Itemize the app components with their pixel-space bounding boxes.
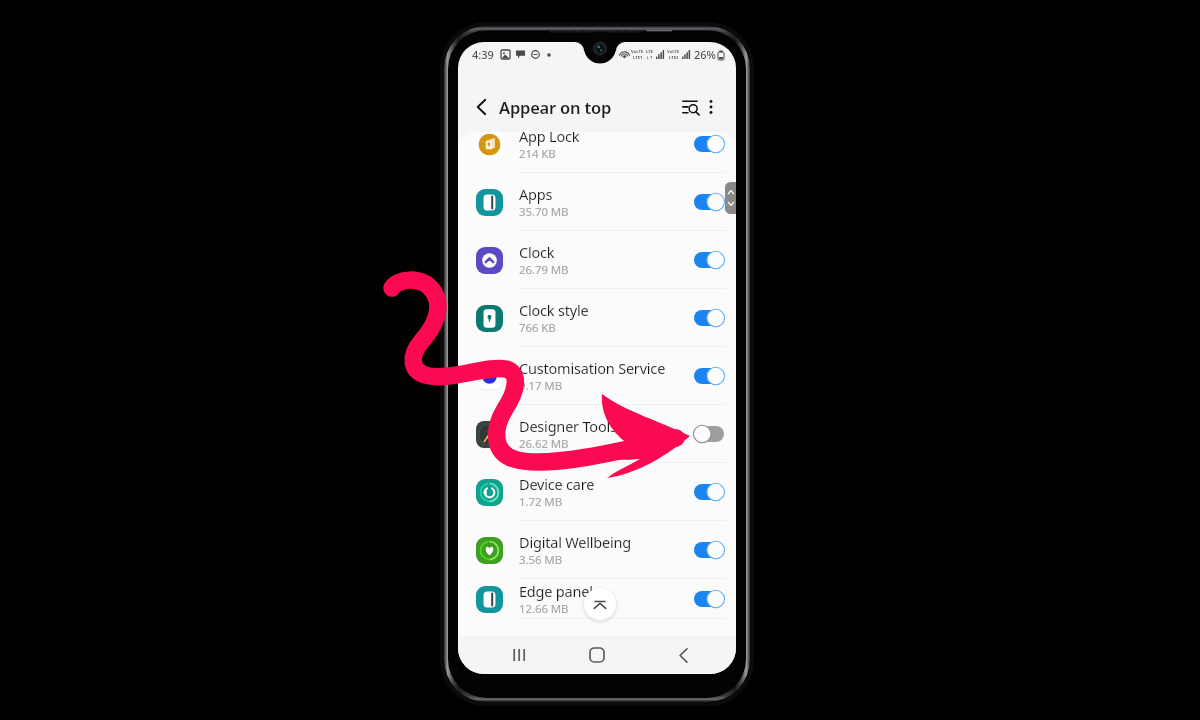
staticText: Customisation Service — [519, 358, 666, 378]
button[interactable]: Apps — [458, 173, 736, 231]
staticText: Designer Tools Pro — [519, 416, 643, 436]
button[interactable]: Device care — [458, 463, 736, 521]
staticText: Appear on top — [499, 96, 612, 118]
staticText: Apps — [519, 184, 553, 204]
staticText: 26% — [694, 47, 716, 62]
staticText: 3.56 MB — [519, 552, 563, 568]
button[interactable]: On — [694, 481, 724, 503]
staticText: ↓↑ — [646, 55, 654, 60]
button[interactable]: On — [694, 365, 724, 387]
staticText: 214 KB — [519, 146, 556, 162]
staticText: 26.79 MB — [519, 262, 569, 278]
button[interactable]: Off — [694, 423, 724, 445]
button[interactable]: Navigate up — [464, 90, 498, 124]
button[interactable]: On — [694, 588, 724, 610]
staticText: LTE1 — [633, 55, 643, 61]
button[interactable]: Clock style — [458, 289, 736, 347]
button[interactable]: Back — [665, 637, 701, 673]
button[interactable]: Clock — [458, 231, 736, 289]
staticText: App Lock — [519, 132, 580, 146]
button[interactable]: On — [694, 539, 724, 561]
staticText: LTE — [646, 49, 654, 55]
button[interactable]: Search — [674, 90, 708, 124]
staticText: 766 KB — [519, 320, 556, 336]
staticText: 35.70 MB — [519, 204, 569, 220]
staticText: 26.62 MB — [519, 436, 569, 452]
button[interactable]: Designer Tools Pro — [458, 405, 736, 463]
staticText: Clock — [519, 242, 555, 262]
staticText: VoLTE — [631, 49, 644, 55]
button[interactable]: App Lock — [458, 132, 736, 173]
staticText: Clock style — [519, 300, 589, 320]
button[interactable]: Digital Wellbeing — [458, 521, 736, 579]
button[interactable]: Home — [579, 637, 615, 673]
staticText: 12.66 MB — [519, 601, 569, 617]
button[interactable]: On — [694, 133, 724, 155]
staticText: 1.72 MB — [519, 494, 563, 510]
staticText: Digital Wellbeing — [519, 532, 632, 552]
button[interactable]: Customisation Service — [458, 347, 736, 405]
button[interactable]: Scroll to top — [584, 588, 616, 620]
staticText: Edge panels — [519, 581, 600, 601]
button[interactable]: More options — [694, 90, 728, 124]
staticText: 4:39 — [472, 47, 494, 62]
button[interactable]: Recents — [501, 637, 537, 673]
staticText: 9.17 MB — [519, 378, 563, 394]
button[interactable]: Scroll bar — [725, 182, 736, 214]
staticText: LTE2 — [669, 55, 679, 61]
button[interactable]: On — [694, 249, 724, 271]
button[interactable]: Edge panels — [458, 579, 736, 619]
button[interactable]: On — [694, 191, 724, 213]
staticText: VoLTE — [667, 49, 680, 55]
staticText: Device care — [519, 474, 595, 494]
button[interactable]: On — [694, 307, 724, 329]
